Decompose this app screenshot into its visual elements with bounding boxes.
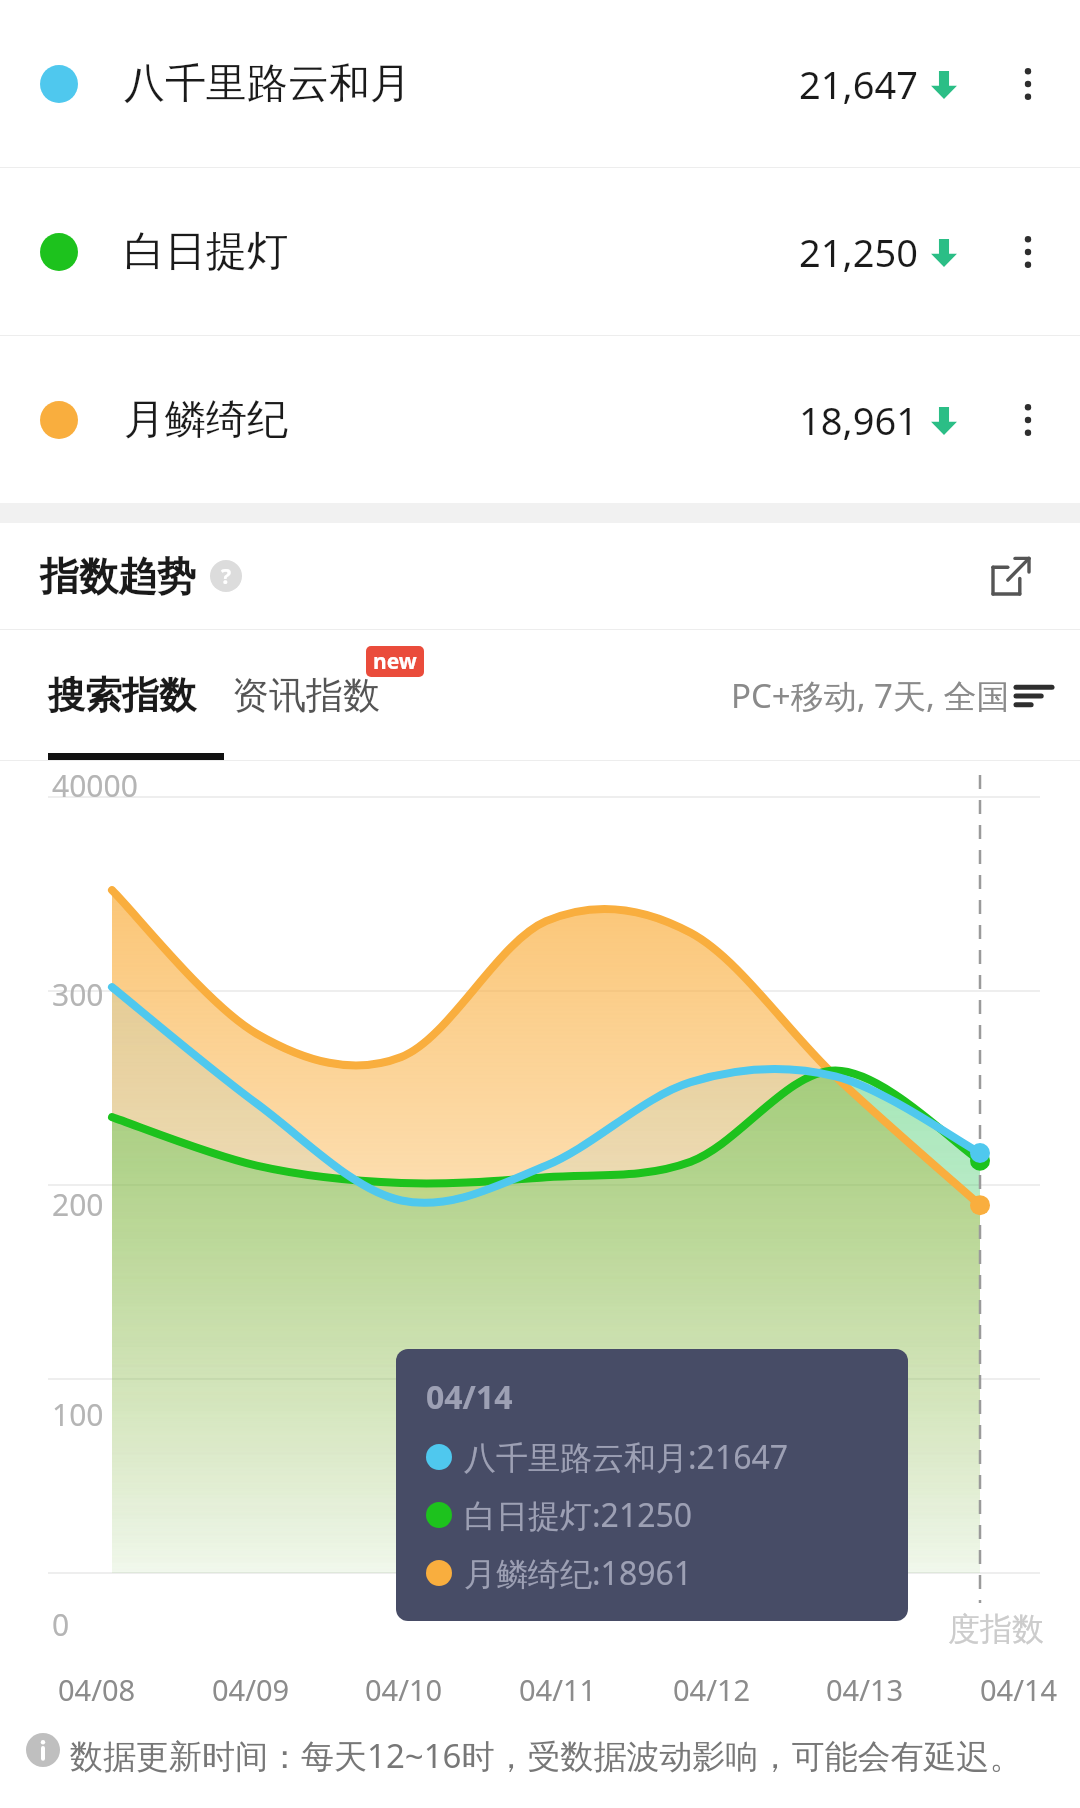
- staticText: 月鳞绮纪: [124, 394, 288, 446]
- button[interactable]: 更多操作: [992, 48, 1064, 120]
- staticText: 200: [52, 1184, 104, 1225]
- button[interactable]: 资讯指数: [232, 672, 380, 719]
- staticText: 白日提灯:21250: [464, 1493, 693, 1537]
- staticText: 月鳞绮纪:18961: [464, 1551, 693, 1595]
- staticText: 04/12: [673, 1670, 751, 1709]
- staticText: 300: [52, 974, 104, 1015]
- staticText: 04/14: [426, 1375, 513, 1419]
- staticText: PC+移动, 7天, 全国: [731, 673, 1010, 718]
- button[interactable]: 更多操作: [992, 384, 1064, 456]
- staticText: 40000: [52, 765, 138, 806]
- staticText: 八千里路云和月:21647: [464, 1435, 789, 1479]
- staticText: 白日提灯: [124, 226, 288, 278]
- staticText: 0: [52, 1604, 70, 1645]
- staticText: 度指数: [948, 1609, 1044, 1649]
- staticText: 04/08: [58, 1670, 136, 1709]
- button[interactable]: 在新页面打开: [976, 541, 1046, 611]
- button[interactable]: 搜索指数: [48, 672, 196, 719]
- staticText: 18,961: [799, 394, 918, 446]
- button[interactable]: 更多操作: [992, 216, 1064, 288]
- button[interactable]: 月鳞绮纪: [0, 336, 1080, 503]
- button[interactable]: 白日提灯: [0, 168, 1080, 335]
- staticText: 04/10: [365, 1670, 443, 1709]
- other: 筛选: [1016, 678, 1052, 714]
- staticText: 数据更新时间：每天12~16时，受数据波动影响，可能会有延迟。: [70, 1733, 1023, 1778]
- staticText: new: [373, 647, 417, 676]
- staticText: 04/14: [980, 1670, 1058, 1709]
- staticText: 04/09: [212, 1670, 290, 1709]
- staticText: 100: [52, 1394, 104, 1435]
- staticText: ?: [221, 562, 232, 591]
- staticText: 21,647: [799, 58, 918, 110]
- staticText: 21,250: [799, 226, 918, 278]
- button[interactable]: PC+移动, 7天, 全国: [731, 673, 1052, 718]
- staticText: 资讯指数: [232, 672, 380, 719]
- button[interactable]: 八千里路云和月: [0, 0, 1080, 167]
- staticText: 04/11: [519, 1670, 597, 1709]
- button[interactable]: 说明: [210, 560, 242, 592]
- staticText: 八千里路云和月: [124, 58, 411, 110]
- staticText: 指数趋势: [40, 552, 196, 601]
- staticText: 搜索指数: [48, 672, 196, 719]
- staticText: 04/13: [826, 1670, 904, 1709]
